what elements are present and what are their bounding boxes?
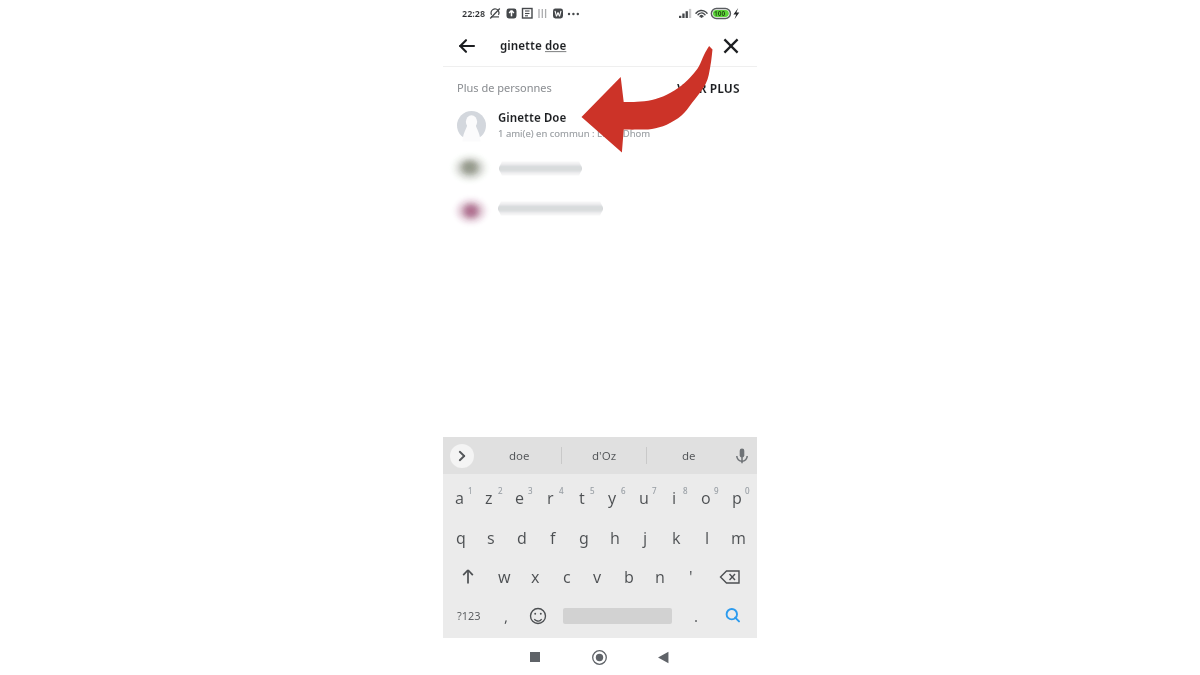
staticText: de [682, 448, 696, 464]
staticText: a [455, 487, 464, 509]
staticText: doe [509, 448, 530, 464]
button[interactable]: p [723, 478, 754, 518]
staticText: d [517, 527, 527, 549]
staticText: c [563, 566, 571, 588]
button[interactable]: m [723, 518, 754, 557]
button[interactable]: e [506, 478, 537, 518]
staticText: 22:28 [462, 7, 486, 19]
button[interactable]: More suggestions [450, 444, 474, 468]
staticText: w [498, 566, 511, 588]
button[interactable]: b [613, 557, 644, 596]
button[interactable]: j [630, 518, 661, 557]
button[interactable]: t [568, 478, 599, 518]
button[interactable]: , [491, 596, 521, 635]
button[interactable]: y [599, 478, 630, 518]
staticText: Ginette Doe [498, 110, 567, 126]
staticText: 1 ami(e) en commun : Lucie Dhom [498, 127, 651, 140]
staticText: r [547, 487, 554, 509]
staticText: x [531, 566, 540, 588]
button[interactable]: r [537, 478, 568, 518]
button[interactable]: w [489, 557, 520, 596]
staticText: 6 [621, 485, 626, 496]
staticText: v [593, 566, 602, 588]
staticText: VOIR PLUS [677, 80, 740, 96]
staticText: h [610, 527, 620, 549]
staticText: o [701, 487, 711, 509]
button[interactable]: s [476, 518, 506, 557]
staticText: l [705, 527, 710, 549]
staticText: 9 [714, 485, 719, 496]
button[interactable]: . [681, 596, 711, 635]
staticText: ' [689, 566, 693, 588]
button[interactable]: n [644, 557, 675, 596]
staticText: b [624, 566, 634, 588]
button[interactable]: z [476, 478, 506, 518]
staticText: 7 [652, 485, 657, 496]
button[interactable]: o [692, 478, 723, 518]
button[interactable]: g [568, 518, 599, 557]
button[interactable]: Recents [521, 643, 549, 671]
button[interactable] [554, 596, 681, 635]
staticText: e [515, 487, 525, 509]
button[interactable]: Shift [446, 557, 489, 596]
button[interactable]: i [661, 478, 692, 518]
staticText: d'Oz [592, 448, 617, 464]
staticText: ginette [500, 38, 545, 54]
staticText: j [643, 527, 648, 549]
staticText: u [639, 487, 649, 509]
staticText: 3 [528, 485, 533, 496]
button[interactable]: l [692, 518, 723, 557]
button[interactable]: k [661, 518, 692, 557]
button[interactable]: v [582, 557, 613, 596]
button[interactable]: ' [675, 557, 706, 596]
button[interactable]: ?123 [446, 596, 491, 635]
button[interactable]: x [520, 557, 551, 596]
staticText: s [487, 527, 495, 549]
staticText: Plus de personnes [457, 80, 552, 95]
button[interactable]: Voice input [730, 444, 754, 468]
button[interactable]: Search [711, 596, 754, 635]
button[interactable]: Back [452, 31, 482, 61]
button[interactable]: Back [649, 643, 677, 671]
staticText: t [579, 487, 585, 509]
staticText: . [694, 606, 699, 626]
staticText: 0 [745, 485, 750, 496]
staticText: 8 [683, 485, 688, 496]
staticText: 100 [714, 9, 726, 18]
staticText: k [672, 527, 681, 549]
staticText: g [579, 527, 589, 549]
button[interactable]: Ginette Doe [443, 107, 757, 143]
button[interactable]: Emoji [521, 596, 554, 635]
button[interactable]: f [537, 518, 568, 557]
staticText: , [504, 606, 509, 626]
button[interactable]: d'Oz [562, 437, 646, 474]
button[interactable]: de [647, 437, 731, 474]
button[interactable]: d [506, 518, 537, 557]
staticText: n [655, 566, 665, 588]
staticText: z [485, 487, 493, 509]
staticText: i [672, 487, 677, 509]
staticText: 1 [468, 485, 473, 496]
button[interactable]: q [446, 518, 476, 557]
button[interactable]: Backspace [706, 557, 754, 596]
button[interactable]: doe [477, 437, 561, 474]
button[interactable]: c [551, 557, 582, 596]
button[interactable]: Clear search [716, 31, 746, 61]
staticText: 5 [590, 485, 595, 496]
staticText: q [456, 527, 466, 549]
button[interactable]: a [446, 478, 476, 518]
staticText: p [732, 487, 742, 509]
staticText: f [550, 527, 556, 549]
button[interactable]: u [630, 478, 661, 518]
staticText: m [731, 527, 746, 549]
staticText: doe [545, 38, 567, 54]
button[interactable]: h [599, 518, 630, 557]
staticText: y [608, 487, 617, 509]
button[interactable]: VOIR PLUS [677, 80, 740, 96]
staticText: ?123 [457, 608, 481, 623]
button[interactable]: Home [585, 643, 613, 671]
staticText: 2 [498, 485, 503, 496]
staticText: 4 [559, 485, 564, 496]
